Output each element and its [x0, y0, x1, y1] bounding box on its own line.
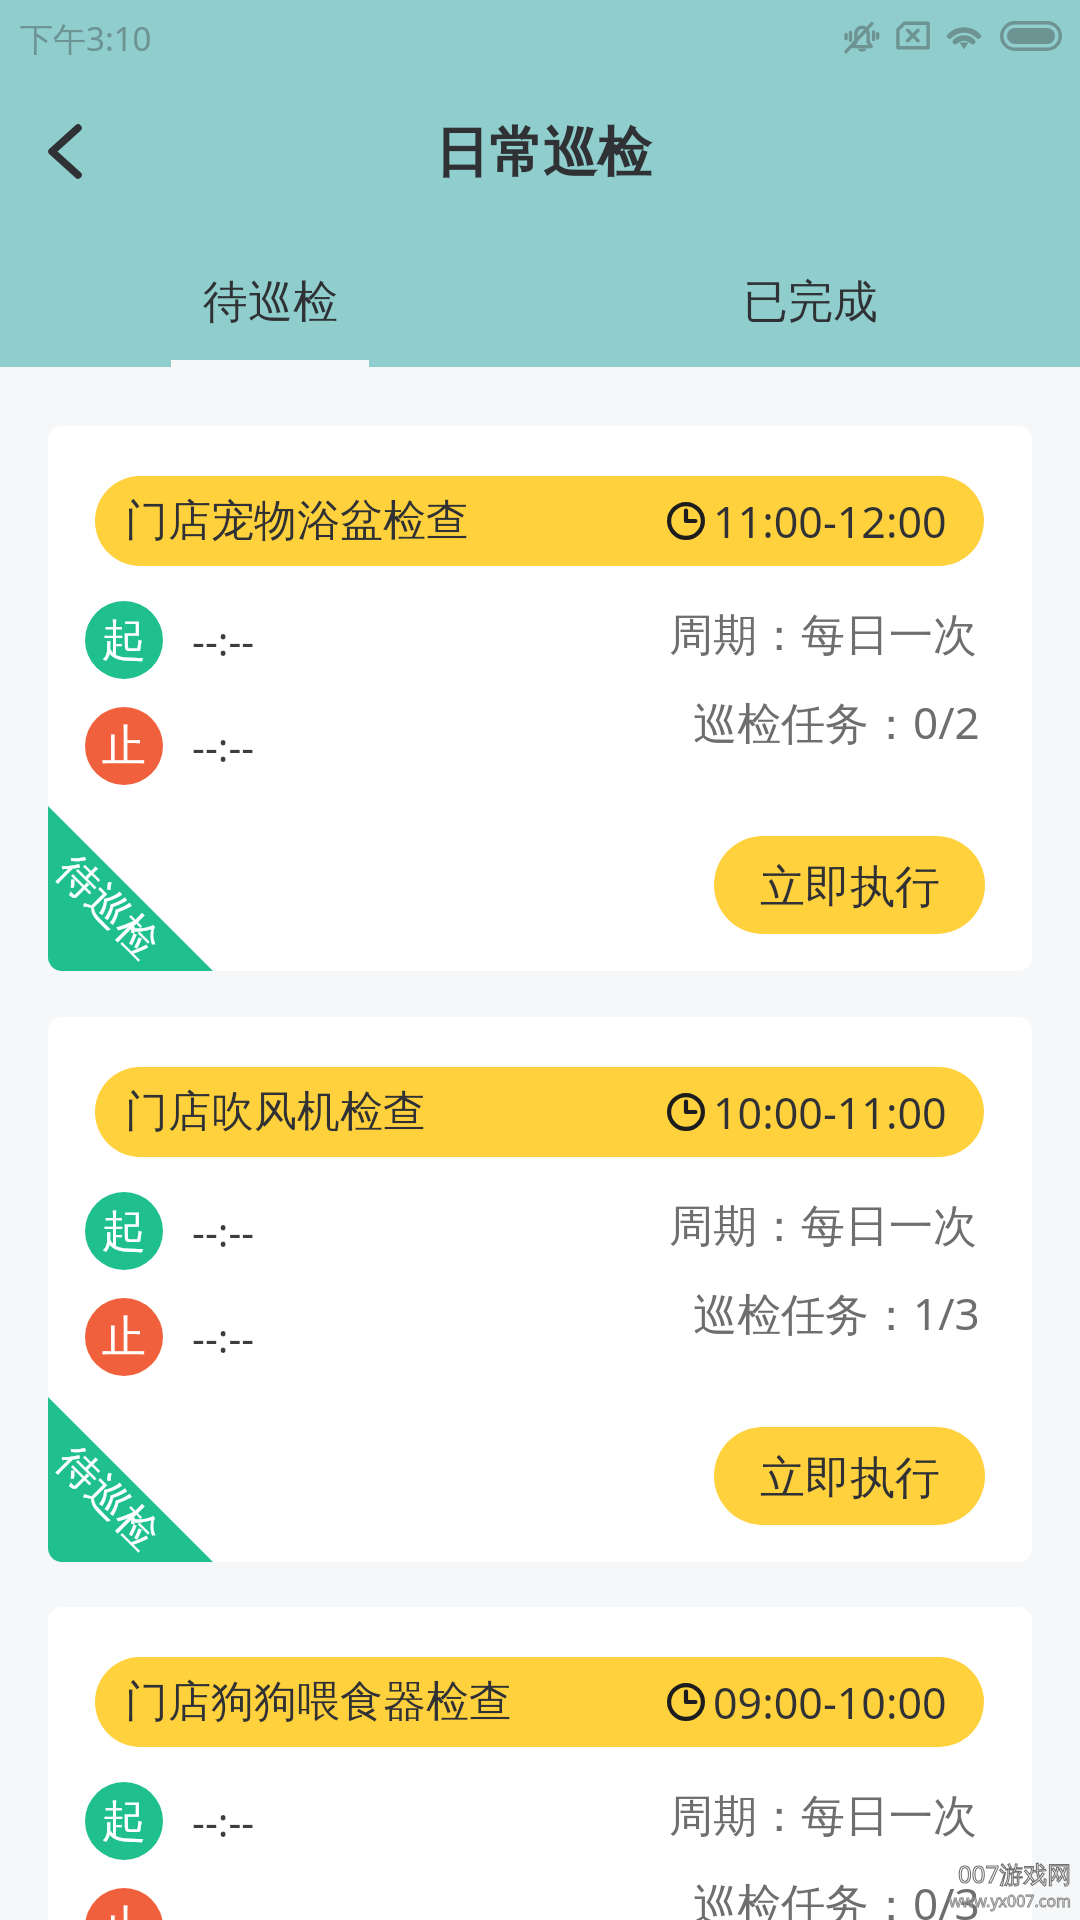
- staticText: 巡检任务：1/3: [693, 1283, 980, 1343]
- staticText: --:--: [192, 1310, 255, 1364]
- button[interactable]: 待巡检: [48, 1607, 1032, 1920]
- staticText: 周期：每日一次: [669, 608, 977, 663]
- button[interactable]: Back: [19, 105, 111, 197]
- staticText: 10:00-11:00: [713, 1083, 947, 1142]
- staticText: 立即执行: [760, 859, 940, 916]
- staticText: 起: [102, 1794, 146, 1849]
- staticText: --:--: [192, 719, 255, 773]
- staticText: 已完成: [743, 274, 878, 331]
- staticText: 门店宠物浴盆检查: [125, 494, 469, 548]
- staticText: 11:00-12:00: [713, 492, 947, 551]
- staticText: 周期：每日一次: [669, 1199, 977, 1254]
- button[interactable]: 立即执行: [714, 836, 985, 934]
- staticText: 007游戏网: [958, 1857, 1072, 1890]
- button[interactable]: 立即执行: [714, 1427, 985, 1525]
- staticText: 止: [102, 1900, 146, 1920]
- staticText: --:--: [192, 1794, 255, 1848]
- staticText: --:--: [192, 1204, 255, 1258]
- staticText: 门店狗狗喂食器检查: [125, 1675, 512, 1729]
- staticText: 待巡检: [203, 274, 338, 331]
- staticText: --:--: [192, 613, 255, 667]
- staticText: www.yx007.com: [949, 1890, 1072, 1912]
- staticText: 09:00-10:00: [713, 1673, 947, 1732]
- staticText: 巡检任务：0/3: [693, 1873, 980, 1920]
- staticText: 下午3:10: [20, 16, 152, 61]
- button[interactable]: 待巡检: [48, 1017, 1032, 1562]
- staticText: 立即执行: [760, 1450, 940, 1507]
- staticText: 待巡检: [48, 845, 169, 969]
- staticText: 周期：每日一次: [669, 1789, 977, 1844]
- staticText: 止: [102, 719, 146, 774]
- staticText: 日常巡检: [435, 119, 651, 187]
- staticText: 起: [102, 1204, 146, 1259]
- button[interactable]: 已完成: [540, 274, 1080, 367]
- staticText: 起: [102, 613, 146, 668]
- button[interactable]: 待巡检: [0, 274, 540, 367]
- button[interactable]: 待巡检: [48, 426, 1032, 971]
- staticText: 巡检任务：0/2: [693, 692, 980, 752]
- staticText: 门店吹风机检查: [125, 1085, 426, 1139]
- staticText: 待巡检: [48, 1436, 169, 1560]
- staticText: 止: [102, 1310, 146, 1365]
